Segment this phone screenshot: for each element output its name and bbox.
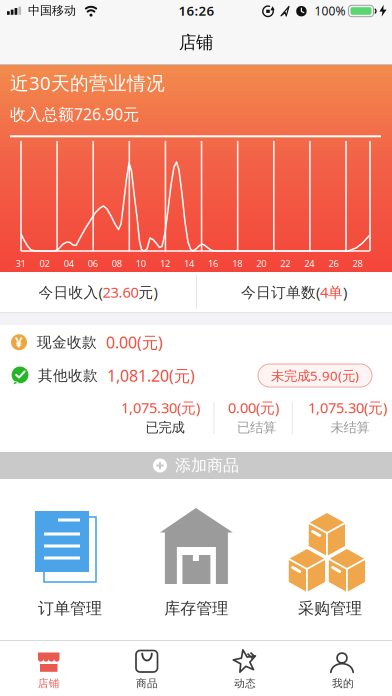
staticText: 20 [256,257,266,270]
staticText: 100% [314,3,345,19]
staticText: 31 [15,257,25,270]
staticText: 1,075.30(元) [121,398,200,417]
staticText: 4单 [320,282,343,302]
staticText: 12 [160,257,170,270]
button[interactable]: 动态 [196,640,294,696]
button[interactable]: 采购管理 [261,495,392,625]
staticText: 店铺 [179,32,213,53]
staticText: 23.60 [102,282,138,302]
staticText: 16 [208,257,218,270]
staticText: 库存管理 [164,599,228,618]
staticText: 18 [232,257,242,270]
staticText: 今日收入( [38,282,102,302]
button[interactable]: 商品 [98,640,196,696]
staticText: 1,075.30(元) [308,398,387,417]
staticText: 订单管理 [38,599,102,618]
staticText: 收入总额726.90元 [10,103,139,125]
staticText: 元) [138,282,157,302]
staticText: 28 [352,257,362,270]
staticText: 动态 [234,677,256,690]
staticText: 04 [64,257,74,270]
staticText: 采购管理 [298,599,362,618]
staticText: 店铺 [38,677,60,690]
staticText: 已结算 [237,419,276,436]
button[interactable]: 今日收入( [0,272,196,312]
staticText: 26 [328,257,338,270]
button[interactable]: 订单管理 [0,495,131,625]
staticText: 24 [304,257,314,270]
button[interactable]: ¥ [0,325,392,359]
staticText: 1,081.20(元) [107,365,195,386]
button[interactable]: 未完成5.90(元) [258,364,372,387]
button[interactable]: 库存管理 [131,495,261,625]
staticText: 未结算 [330,419,369,436]
staticText: 10 [136,257,146,270]
staticText: 16:26 [178,2,214,19]
staticText: 现金收款 [37,333,97,351]
staticText: 商品 [136,677,158,690]
staticText: 08 [112,257,122,270]
staticText: 我的 [332,677,354,690]
staticText: 02 [40,257,50,270]
staticText: 中国移动 [28,3,76,18]
button[interactable]: 添加商品 [0,452,392,479]
button[interactable]: 店铺 [0,640,98,696]
staticText: 0.00(元) [228,398,279,417]
staticText: 22 [280,257,290,270]
staticText: ¥ [15,333,23,351]
staticText: 其他收款 [38,366,98,384]
button[interactable]: 今日订单数( [196,272,392,312]
staticText: 14 [184,257,194,270]
staticText: 未完成5.90(元) [271,367,359,384]
staticText: 今日订单数( [241,282,320,302]
button[interactable]: 我的 [294,640,392,696]
staticText: 06 [88,257,98,270]
staticText: 已完成 [145,419,184,436]
staticText: 0.00(元) [106,332,163,353]
staticText: 添加商品 [175,456,239,475]
staticText: 近30天的营业情况 [10,70,165,95]
staticText: ) [343,282,347,302]
